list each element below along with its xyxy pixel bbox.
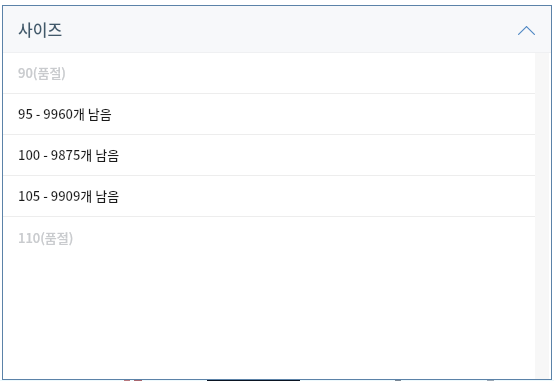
staticText: 110(품절) bbox=[18, 228, 74, 247]
button[interactable]: 105 - 9909개 남음 bbox=[3, 176, 551, 216]
button[interactable]: 사이즈 bbox=[3, 6, 551, 52]
button[interactable]: 95 - 9960개 남음 bbox=[3, 94, 551, 134]
staticText: 100 - 9875개 남음 bbox=[18, 145, 120, 164]
staticText: 95 - 9960개 남음 bbox=[18, 104, 112, 123]
button[interactable]: 110(품절) bbox=[3, 217, 551, 258]
other: Collapse 사이즈 section bbox=[514, 17, 538, 41]
staticText: 90(품절) bbox=[18, 63, 66, 82]
staticText: 105 - 9909개 남음 bbox=[18, 186, 120, 205]
button[interactable]: 100 - 9875개 남음 bbox=[3, 135, 551, 175]
button[interactable]: 90(품절) bbox=[3, 53, 551, 93]
staticText: 사이즈 bbox=[18, 17, 63, 40]
